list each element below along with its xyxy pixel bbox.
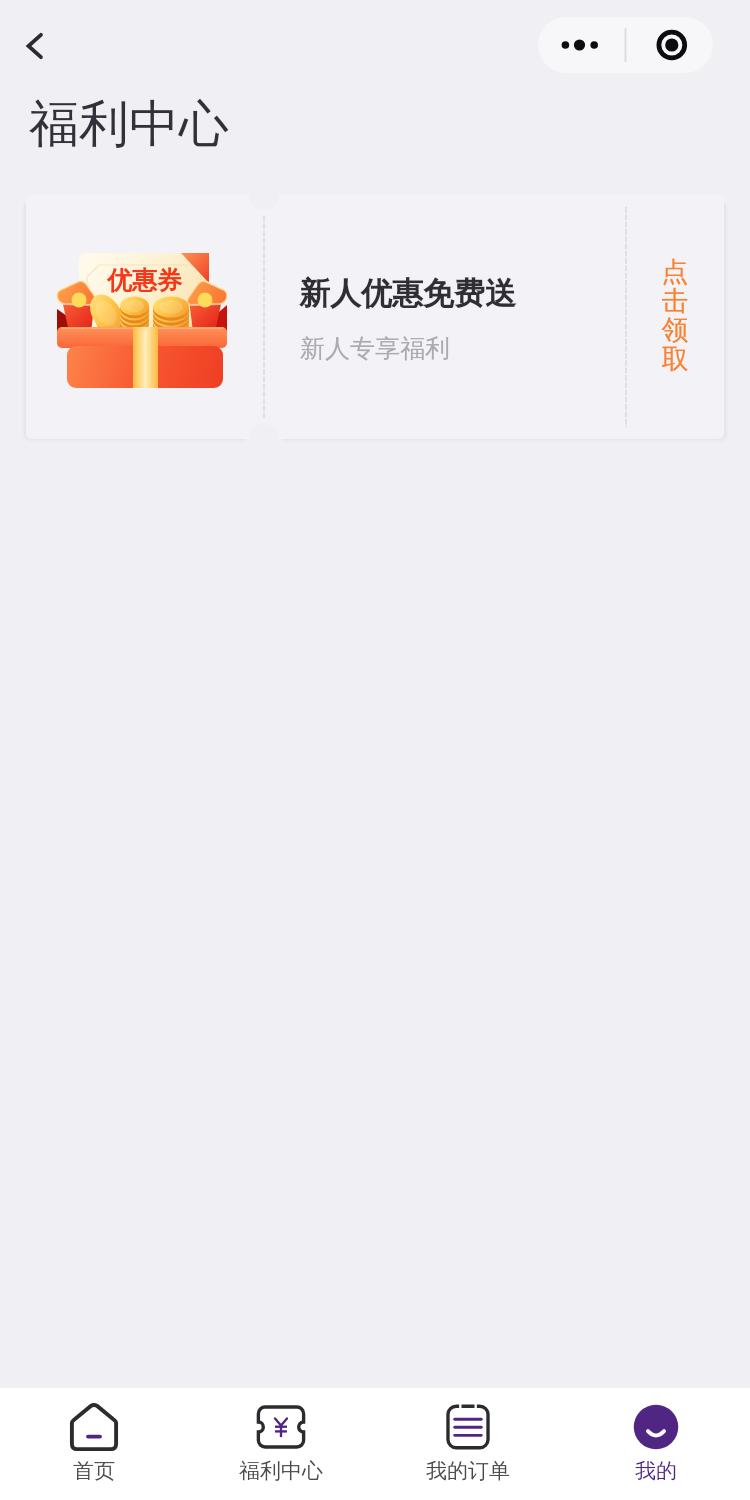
button[interactable]: 我的订单 bbox=[374, 1388, 562, 1500]
button[interactable]: 首页 bbox=[0, 1388, 187, 1500]
staticText: 点 bbox=[660, 255, 690, 289]
staticText: 福利中心 bbox=[239, 1458, 323, 1484]
button[interactable]: Menu bbox=[538, 17, 713, 73]
staticText: 取 bbox=[660, 342, 690, 376]
button[interactable]: Back bbox=[10, 20, 62, 72]
staticText: 新人优惠免费送 bbox=[299, 274, 516, 313]
staticText: 首页 bbox=[73, 1458, 115, 1484]
staticText: 我的订单 bbox=[426, 1458, 510, 1484]
staticText: 我的 bbox=[635, 1458, 677, 1484]
staticText: 新人专享福利 bbox=[300, 333, 450, 364]
staticText: 福利中心 bbox=[29, 93, 229, 156]
staticText: 优惠券 bbox=[107, 265, 182, 296]
button[interactable]: 我的 bbox=[562, 1388, 750, 1500]
button[interactable]: 福利中心 bbox=[187, 1388, 374, 1500]
button[interactable]: 优惠券 bbox=[26, 195, 724, 439]
staticText: 击 bbox=[660, 284, 690, 318]
staticText: 领 bbox=[660, 313, 690, 347]
